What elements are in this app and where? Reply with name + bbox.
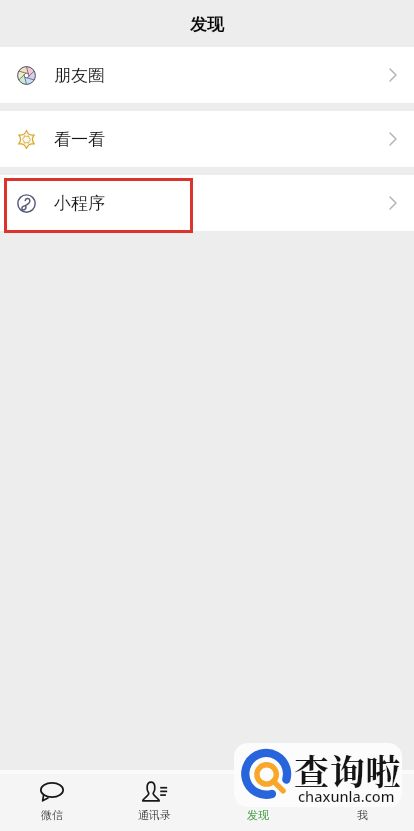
staticText: 看一看 (54, 129, 105, 150)
staticText: 我 (357, 808, 368, 822)
staticText: 朋友圈 (54, 65, 105, 86)
button[interactable]: 发现 (206, 774, 310, 831)
staticText: 通讯录 (138, 808, 171, 822)
staticText: 发现 (190, 14, 224, 35)
button[interactable]: 看一看 (0, 111, 414, 167)
staticText: 查询啦 (294, 745, 402, 795)
button[interactable]: 我 (310, 774, 414, 831)
button[interactable]: 小程序 (0, 175, 414, 231)
button[interactable]: 朋友圈 (0, 47, 414, 103)
staticText: 小程序 (54, 193, 105, 214)
button[interactable]: 微信 (0, 774, 103, 831)
button[interactable]: 通讯录 (103, 774, 206, 831)
staticText: 发现 (247, 808, 269, 822)
staticText: chaxunla.com (298, 786, 395, 806)
staticText: 微信 (41, 808, 63, 822)
